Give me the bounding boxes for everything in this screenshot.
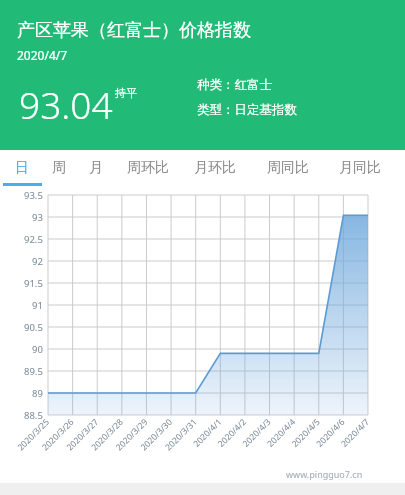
staticText: 月环比 — [194, 159, 236, 177]
staticText: 周环比 — [127, 159, 169, 177]
staticText: 2020/4/7 — [17, 47, 68, 63]
button[interactable]: 周同比 — [258, 150, 318, 186]
staticText: 周 — [52, 159, 66, 177]
staticText: 持平 — [115, 86, 137, 100]
button[interactable]: 月同比 — [330, 150, 390, 186]
staticText: 日 — [15, 159, 29, 177]
staticText: 周同比 — [267, 159, 309, 177]
staticText: 类型：日定基指数 — [197, 102, 297, 118]
staticText: 产区苹果（红富士）价格指数 — [17, 19, 251, 42]
staticText: 月 — [89, 159, 103, 177]
button[interactable]: 日 — [6, 150, 38, 186]
staticText: 月同比 — [339, 159, 381, 177]
button[interactable]: 周环比 — [118, 150, 178, 186]
button[interactable]: 周 — [43, 150, 75, 186]
button[interactable]: 月环比 — [185, 150, 245, 186]
staticText: 93.04 — [19, 79, 113, 129]
staticText: 种类：红富士 — [197, 77, 272, 93]
button[interactable]: 月 — [80, 150, 112, 186]
